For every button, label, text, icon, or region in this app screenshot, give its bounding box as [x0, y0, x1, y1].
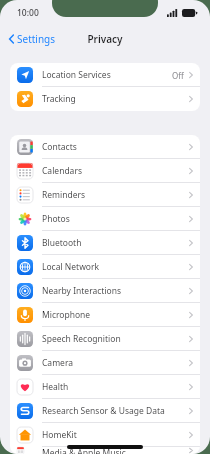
staticText: Nearby Interactions: [42, 285, 189, 297]
button[interactable]: Camera: [10, 351, 200, 375]
staticText: Health: [42, 381, 189, 393]
staticText: Local Network: [42, 261, 189, 273]
button[interactable]: Media & Apple Music: [10, 447, 200, 454]
staticText: Speech Recognition: [42, 333, 189, 345]
staticText: Calendars: [42, 165, 189, 177]
staticText: Privacy: [87, 32, 123, 46]
button[interactable]: Nearby Interactions: [10, 279, 200, 303]
button[interactable]: Reminders: [10, 183, 200, 207]
staticText: Bluetooth: [42, 237, 189, 249]
button[interactable]: Settings: [6, 29, 59, 49]
staticText: Contacts: [42, 141, 189, 153]
staticText: Tracking: [42, 93, 189, 105]
staticText: Media & Apple Music: [42, 447, 189, 454]
staticText: Camera: [42, 357, 189, 369]
button[interactable]: Tracking: [10, 87, 200, 111]
staticText: Photos: [42, 213, 189, 225]
staticText: HomeKit: [42, 429, 189, 441]
staticText: Settings: [17, 32, 56, 46]
button[interactable]: HomeKit: [10, 423, 200, 447]
staticText: 10:00: [17, 7, 39, 19]
button[interactable]: Research Sensor & Usage Data: [10, 399, 200, 423]
button[interactable]: Location Services: [10, 63, 200, 87]
other: Dynamic Island: [52, 0, 158, 17]
button[interactable]: Health: [10, 375, 200, 399]
button[interactable]: Speech Recognition: [10, 327, 200, 351]
button[interactable]: Bluetooth: [10, 231, 200, 255]
staticText: Off: [172, 70, 184, 81]
button[interactable]: Contacts: [10, 135, 200, 159]
staticText: Research Sensor & Usage Data: [42, 405, 189, 417]
button[interactable]: Calendars: [10, 159, 200, 183]
staticText: Microphone: [42, 309, 189, 321]
staticText: Location Services: [42, 69, 172, 81]
button[interactable]: Photos: [10, 207, 200, 231]
button[interactable]: Microphone: [10, 303, 200, 327]
button[interactable]: Local Network: [10, 255, 200, 279]
staticText: Reminders: [42, 189, 189, 201]
